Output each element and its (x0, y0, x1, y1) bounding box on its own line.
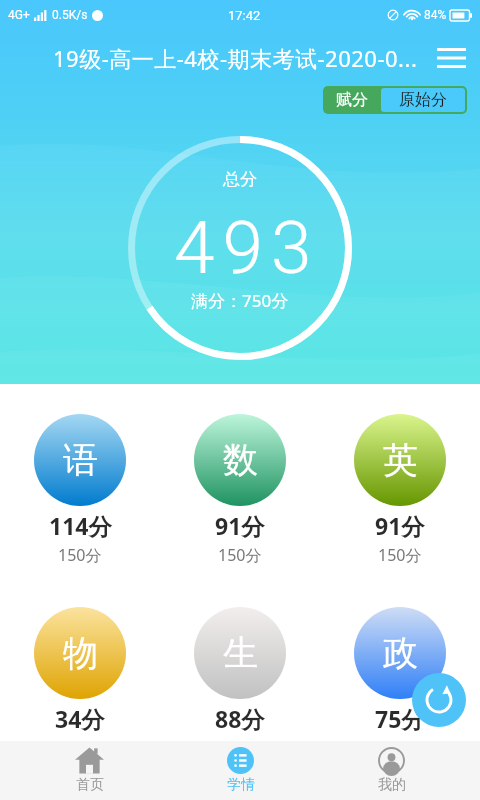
staticText: 生 (223, 631, 258, 675)
staticText: 17:42 (228, 8, 261, 23)
staticText: 34分 (55, 703, 105, 734)
staticText: 赋分 (336, 90, 368, 110)
staticText: 总分 (223, 169, 257, 190)
button[interactable]: 我的 (351, 741, 431, 800)
button[interactable]: 学情 (200, 741, 280, 800)
staticText: 原始分 (399, 90, 447, 110)
button[interactable]: 生 (160, 607, 320, 759)
staticText: 91分 (375, 510, 425, 541)
staticText: 0.5K/s (52, 8, 88, 22)
button[interactable]: 数 (160, 414, 320, 566)
staticText: 150分 (218, 544, 262, 566)
staticText: 英 (383, 438, 418, 482)
staticText: 学情 (227, 776, 255, 794)
button[interactable]: 物 (0, 607, 160, 759)
staticText: 114分 (49, 510, 112, 541)
staticText: 100分 (378, 737, 422, 759)
staticText: 150分 (378, 544, 422, 566)
button[interactable]: Menu (431, 38, 471, 78)
staticText: 100分 (58, 737, 102, 759)
staticText: 物 (63, 631, 98, 675)
staticText: 我的 (378, 776, 406, 794)
button[interactable]: 语 (0, 414, 160, 566)
staticText: 150分 (58, 544, 102, 566)
staticText: 满分：750分 (191, 289, 289, 312)
button[interactable]: Refresh (412, 673, 466, 727)
button[interactable]: 原始分 (381, 88, 465, 112)
button[interactable]: 政 (320, 607, 480, 759)
staticText: 88分 (215, 703, 265, 734)
staticText: 493 (174, 205, 320, 291)
button[interactable]: 赋分 (323, 86, 381, 114)
button[interactable]: 英 (320, 414, 480, 566)
button[interactable]: 首页 (49, 741, 129, 800)
staticText: 4G+ (8, 8, 30, 22)
staticText: 数 (223, 438, 258, 482)
staticText: 75分 (375, 703, 425, 734)
staticText: 84% (424, 8, 447, 22)
staticText: 语 (63, 438, 98, 482)
staticText: 91分 (215, 510, 265, 541)
staticText: 首页 (76, 776, 104, 794)
staticText: 100分 (218, 737, 262, 759)
staticText: 19级-高一上-4校-期末考试-2020-0... (53, 43, 418, 73)
staticText: 政 (383, 631, 418, 675)
